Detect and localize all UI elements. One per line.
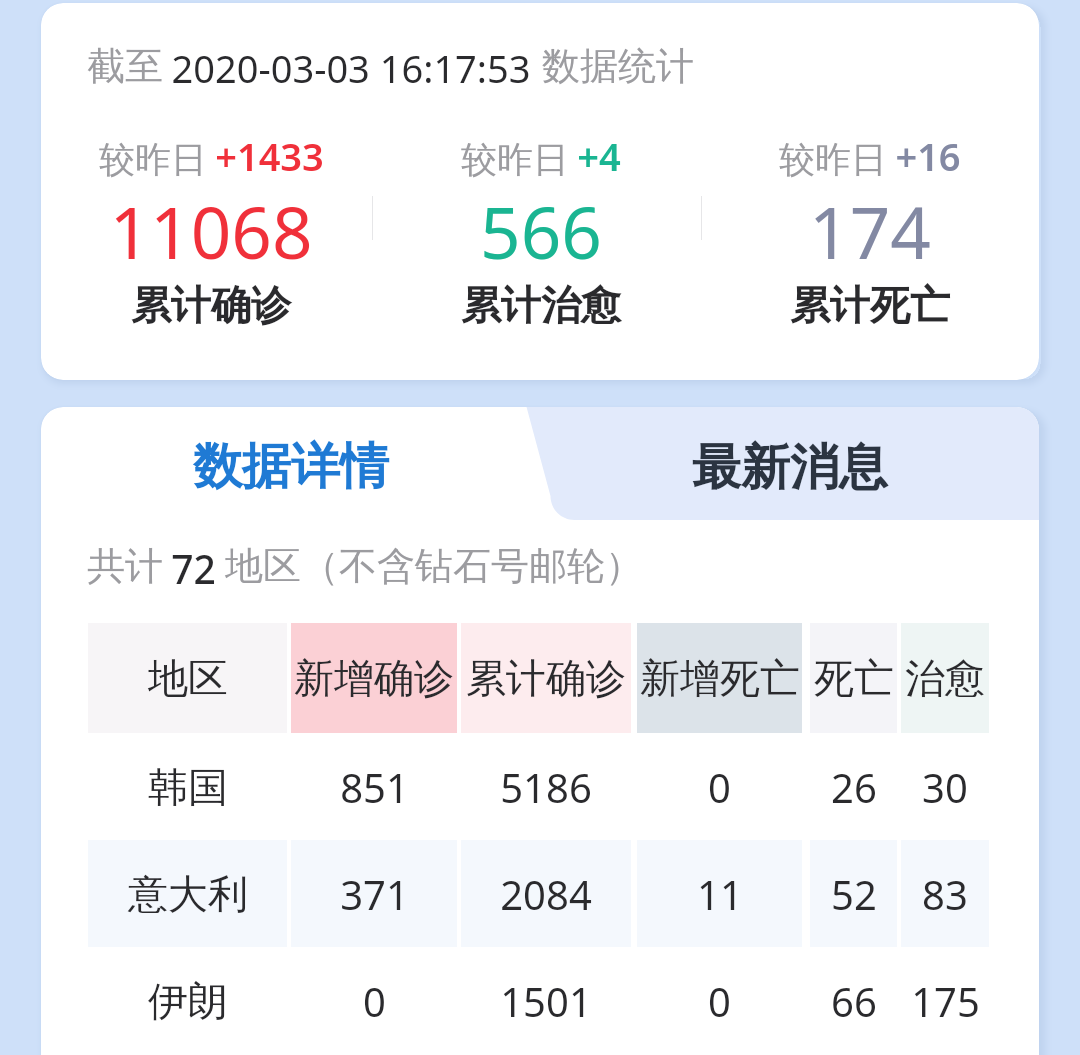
staticText: 数据详情 [193,436,389,498]
staticText: 30 [922,760,968,814]
staticText: 最新消息 [692,437,888,499]
staticText: 11 [697,867,743,921]
staticText: +16 [895,130,961,182]
button[interactable]: 意大利 [88,840,989,947]
staticText: 11068 [109,183,313,280]
staticText: 累计确诊 [131,280,291,330]
staticText: 174 [809,183,931,280]
button[interactable]: 数据详情 [41,407,540,520]
staticText: +4 [577,130,621,182]
button[interactable]: 死亡 [810,623,897,733]
staticText: 52 [831,867,877,921]
staticText: 851 [340,760,409,814]
button[interactable]: 较昨日 [701,130,1039,330]
button[interactable]: 较昨日 [382,130,700,330]
staticText: 较昨日 [461,137,569,182]
button[interactable]: 地区 [88,623,287,733]
staticText: 较昨日 [779,137,887,182]
button[interactable]: 累计确诊 [461,623,631,733]
staticText: 累计死亡 [790,280,950,330]
staticText: 0 [708,760,731,814]
staticText: 1501 [500,974,592,1028]
staticText: 175 [911,974,980,1028]
staticText: 数据统计 [542,42,694,90]
staticText: 治愈 [905,653,985,703]
staticText: 意大利 [128,869,248,919]
button[interactable]: 较昨日 [41,130,381,330]
staticText: 伊朗 [148,976,228,1026]
staticText: 66 [831,974,877,1028]
button[interactable]: 治愈 [901,623,989,733]
staticText: 566 [480,183,602,280]
button[interactable]: 最新消息 [540,407,1039,520]
staticText: 地区 [148,653,228,703]
staticText: +1433 [215,130,324,182]
staticText: 死亡 [814,653,894,703]
staticText: 截至 [87,42,163,90]
staticText: 0 [363,974,386,1028]
staticText: 韩国 [148,762,228,812]
staticText: 371 [340,867,409,921]
button[interactable]: 伊朗 [88,947,989,1054]
staticText: 新增死亡 [640,653,800,703]
staticText: 新增确诊 [294,653,454,703]
staticText: 2084 [500,867,592,921]
staticText: 累计确诊 [466,653,626,703]
staticText: 72 [171,542,216,595]
button[interactable]: 新增确诊 [291,623,457,733]
staticText: 5186 [500,760,592,814]
staticText: 共计 [87,542,163,590]
staticText: 83 [922,867,968,921]
button[interactable]: 新增死亡 [637,623,802,733]
staticText: 26 [831,760,877,814]
staticText: 0 [708,974,731,1028]
staticText: 较昨日 [99,137,207,182]
staticText: 地区（不含钻石号邮轮） [225,542,643,590]
button[interactable]: 韩国 [88,733,989,840]
staticText: 2020-03-03 16:17:53 [171,42,531,94]
staticText: 累计治愈 [461,280,621,330]
